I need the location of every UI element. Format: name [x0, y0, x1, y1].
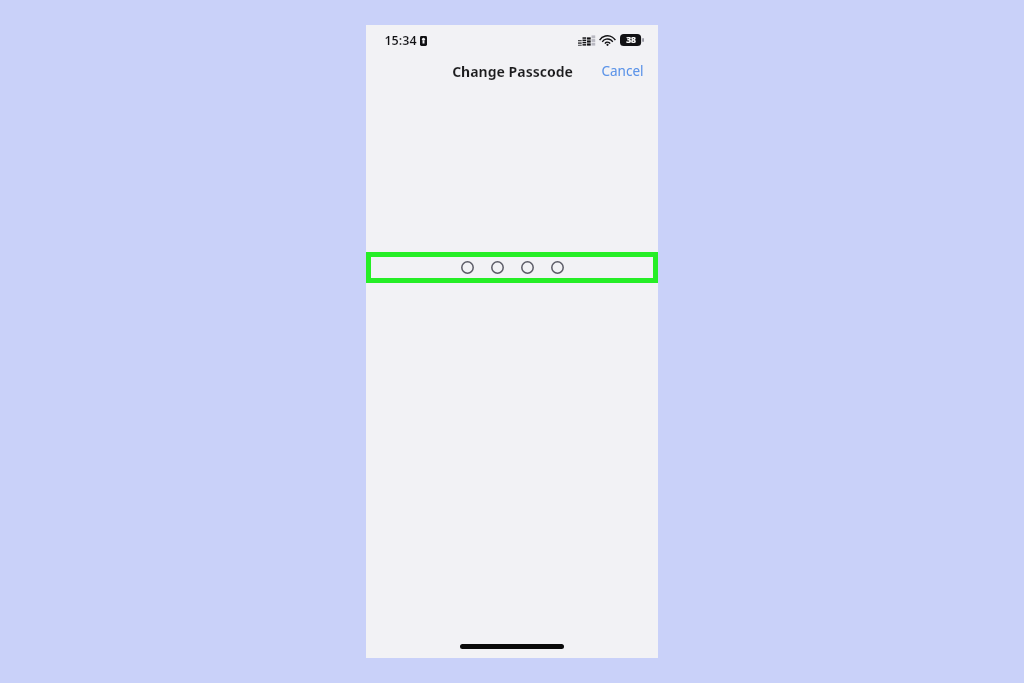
staticText: 15:34	[384, 32, 417, 49]
other: Cellular signal	[578, 35, 595, 46]
staticText: Change Passcode	[452, 62, 573, 81]
staticText: Verify your new passcode	[437, 253, 587, 270]
button[interactable]: Passcode entry field	[366, 252, 658, 283]
staticText: Cancel	[601, 62, 644, 80]
other: Battery 38 percent	[620, 34, 644, 46]
staticText: 38	[626, 34, 636, 46]
button[interactable]: Cancel	[595, 58, 650, 84]
button[interactable]: Change Passcode	[446, 59, 579, 84]
other: Wi-Fi	[600, 35, 615, 46]
